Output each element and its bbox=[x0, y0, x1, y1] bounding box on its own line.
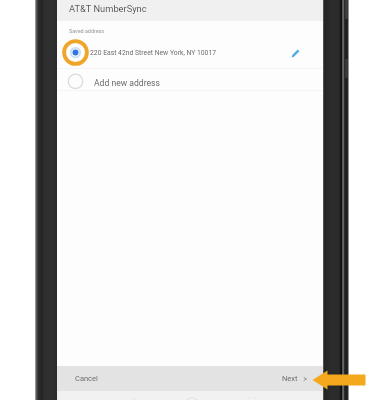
staticText: 220 East 42nd Street New York, NY 10017 bbox=[90, 49, 217, 57]
button[interactable]: Next bbox=[282, 366, 308, 391]
button[interactable]: 220 East 42nd Street New York, NY 10017 bbox=[57, 38, 323, 68]
staticText: Saved address bbox=[69, 28, 105, 34]
staticText: AT&T NumberSync bbox=[69, 3, 147, 14]
staticText: Next bbox=[282, 374, 298, 383]
button[interactable]: Add new address bbox=[57, 68, 323, 90]
button[interactable]: AT&T NumberSync bbox=[57, 0, 323, 21]
staticText: Add new address bbox=[94, 78, 160, 88]
button[interactable]: Edit address bbox=[283, 41, 307, 65]
staticText: Cancel bbox=[75, 374, 98, 383]
button[interactable]: Cancel bbox=[75, 366, 98, 391]
